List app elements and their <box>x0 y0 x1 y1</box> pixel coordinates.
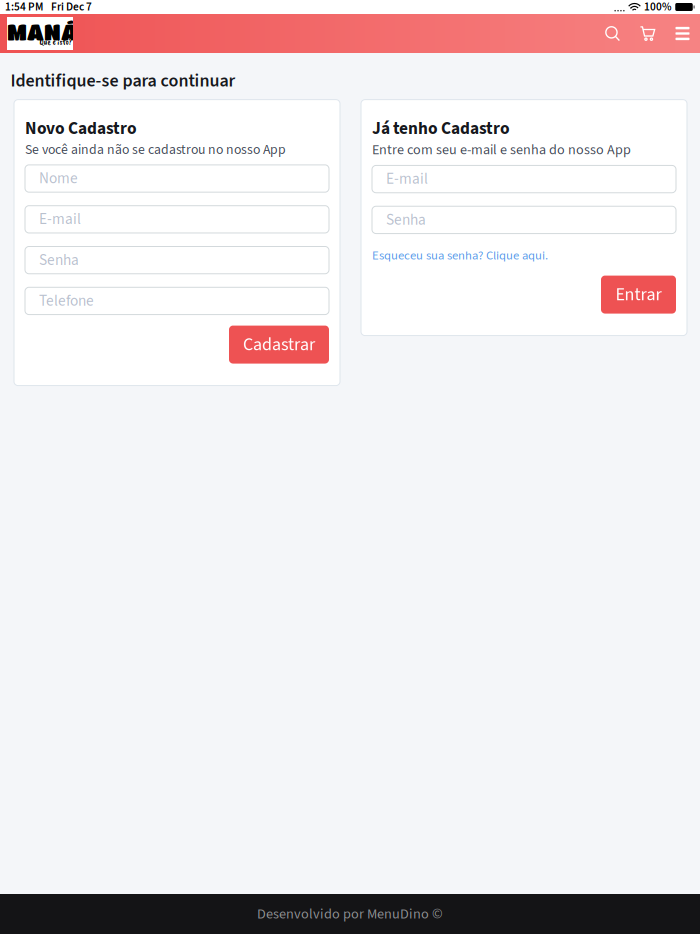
staticText: Senha <box>39 249 79 271</box>
button[interactable]: Shopping cart <box>630 14 665 53</box>
staticText: Senha <box>386 209 426 231</box>
staticText: Novo Cadastro <box>25 116 137 141</box>
staticText: Já tenho Cadastro <box>372 116 510 141</box>
staticText: E-mail <box>386 168 428 190</box>
staticText: Telefone <box>39 290 94 312</box>
staticText: Fri Dec 7 <box>51 0 92 15</box>
button[interactable]: Cadastrar <box>229 326 329 364</box>
button[interactable]: Esqueceu sua senha? Clique aqui. <box>372 246 548 264</box>
button[interactable]: Entrar <box>601 276 676 314</box>
button[interactable]: Menu <box>665 14 700 53</box>
staticText: 1:54 PM <box>5 0 43 15</box>
staticText: Esqueceu sua senha? Clique aqui. <box>372 246 548 264</box>
staticText: Cadastrar <box>243 332 315 357</box>
staticText: Desenvolvido por MenuDino © <box>257 904 443 924</box>
staticText: Entrar <box>615 282 661 307</box>
staticText: MANÁ <box>7 19 78 45</box>
staticText: E-mail <box>39 208 81 230</box>
staticText: Que é isto? <box>39 36 72 47</box>
staticText: 100% <box>644 0 672 15</box>
staticText: Entre com seu e-mail e senha do nosso Ap… <box>372 140 631 160</box>
staticText: Nome <box>39 168 78 189</box>
staticText: Identifique-se para continuar <box>10 68 235 94</box>
button[interactable]: Maná home <box>7 17 73 50</box>
staticText: Se você ainda não se cadastrou no nosso … <box>25 140 286 159</box>
button[interactable]: Search <box>595 14 630 53</box>
